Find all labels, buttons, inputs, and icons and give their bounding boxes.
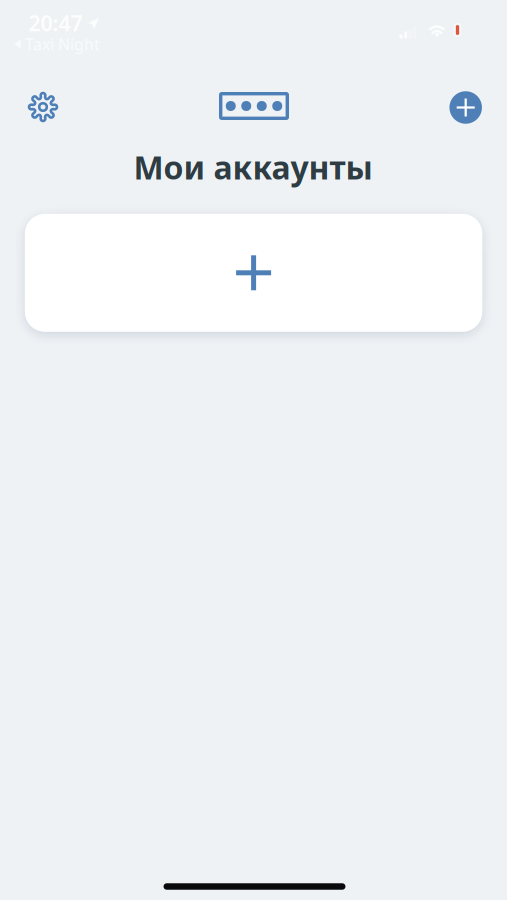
staticText: Мои аккаунты (133, 146, 372, 188)
staticText: Taxi Night (25, 33, 100, 55)
staticText: 20:47 (28, 9, 82, 37)
button[interactable]: Add account (25, 214, 482, 332)
button[interactable]: Master password (210, 83, 298, 129)
button[interactable]: New account (443, 84, 489, 130)
button[interactable]: Settings (20, 84, 66, 130)
